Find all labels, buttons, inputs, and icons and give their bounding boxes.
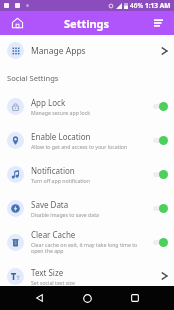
button[interactable]: Menu (149, 14, 167, 32)
staticText: Enable Location (31, 131, 91, 142)
staticText: 1:13 AM (145, 1, 171, 10)
staticText: Text Size (31, 267, 64, 278)
staticText: Save Data (31, 199, 69, 210)
button[interactable] (153, 135, 168, 145)
staticText: Settings (64, 16, 110, 31)
button[interactable]: Back (29, 288, 49, 308)
button[interactable] (153, 237, 168, 247)
button[interactable] (153, 169, 168, 179)
staticText: Social Settings (7, 73, 59, 83)
button[interactable]: Save Data (0, 191, 174, 225)
button[interactable]: Manage Apps (0, 35, 174, 66)
staticText: Turn off app notification (31, 177, 90, 184)
button[interactable]: Recents (125, 288, 145, 308)
staticText: Set social text size (31, 279, 75, 286)
button[interactable]: App Lock (0, 89, 174, 123)
staticText: Clear Cache (31, 229, 76, 240)
staticText: Notification (31, 165, 75, 176)
button[interactable]: Notification (0, 157, 174, 191)
button[interactable]: Enable Location (0, 123, 174, 157)
staticText: Manage secure app lock (31, 109, 90, 116)
button[interactable] (153, 203, 168, 213)
staticText: App Lock (31, 97, 66, 108)
staticText: Allow to get and access to your location (31, 143, 128, 150)
staticText: Manage Apps (31, 45, 86, 57)
button[interactable] (153, 101, 168, 111)
button[interactable]: Home (77, 288, 97, 308)
staticText: 46% (130, 1, 143, 10)
button[interactable]: Home (6, 12, 28, 34)
button[interactable]: Clear Cache (0, 225, 174, 259)
staticText: Disable images to save data (31, 211, 99, 218)
button[interactable]: Text Size (0, 259, 174, 293)
staticText: Clear cache on exit, it may take long ti… (31, 241, 138, 255)
